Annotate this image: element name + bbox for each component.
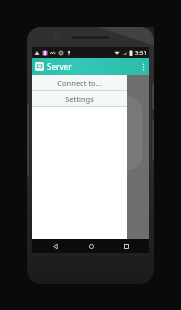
button[interactable]: Back [42,239,68,253]
button[interactable]: Settings [32,91,127,106]
staticText: Server [47,61,72,72]
button[interactable]: Home [78,239,104,253]
button[interactable]: Connect to... [32,75,127,90]
button[interactable]: More options [137,58,149,75]
button[interactable]: Recent apps [113,239,139,253]
staticText: Settings [65,94,94,104]
staticText: Connect to... [57,78,102,88]
staticText: 3:51 [135,49,147,57]
